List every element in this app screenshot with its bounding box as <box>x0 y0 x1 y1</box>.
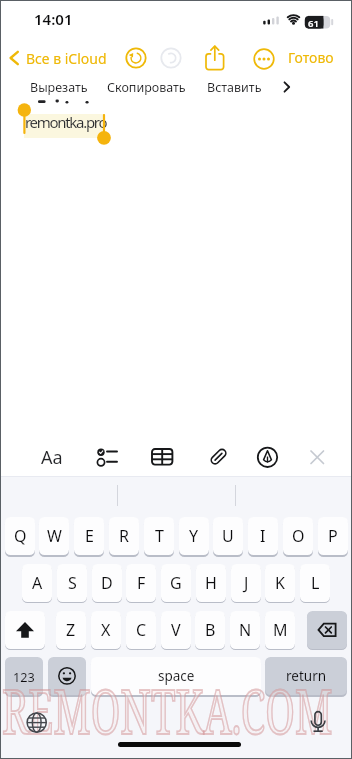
staticText: R <box>119 525 129 547</box>
staticText: 123 <box>13 668 35 685</box>
button[interactable]: P <box>318 517 348 555</box>
staticText: REMONTKA.COM <box>2 667 333 751</box>
button[interactable]: Скопировать <box>107 79 193 97</box>
button[interactable]: W <box>39 517 69 555</box>
button[interactable] <box>160 47 182 69</box>
staticText: Aa <box>41 445 63 470</box>
button[interactable] <box>253 48 275 70</box>
button[interactable]: J <box>231 564 261 602</box>
staticText: O <box>292 525 305 547</box>
button[interactable] <box>48 657 86 695</box>
button[interactable] <box>309 449 326 466</box>
staticText: I <box>260 525 266 547</box>
staticText: Z <box>66 619 76 641</box>
button[interactable]: E <box>74 517 104 555</box>
button[interactable]: B <box>195 611 225 649</box>
button[interactable] <box>203 44 227 72</box>
button[interactable] <box>205 444 231 471</box>
button[interactable]: M <box>265 611 295 649</box>
button[interactable]: O <box>283 517 313 555</box>
button[interactable] <box>280 79 294 95</box>
staticText: Скопировать <box>107 79 186 96</box>
button[interactable] <box>5 611 45 649</box>
staticText: S <box>68 572 77 594</box>
button[interactable]: U <box>213 517 243 555</box>
button[interactable]: X <box>91 611 121 649</box>
staticText: L <box>311 572 320 594</box>
staticText: D <box>101 572 113 594</box>
staticText: G <box>170 572 182 594</box>
button[interactable]: space <box>91 657 261 695</box>
staticText: A <box>32 572 43 594</box>
staticText: K <box>275 572 285 594</box>
staticText: W <box>47 525 62 547</box>
button[interactable]: R <box>109 517 139 555</box>
button[interactable]: A <box>22 564 52 602</box>
button[interactable]: N <box>230 611 260 649</box>
staticText: space <box>158 667 195 685</box>
button[interactable]: Y <box>179 517 209 555</box>
button[interactable]: S <box>57 564 87 602</box>
button[interactable] <box>257 444 283 470</box>
staticText: Готово <box>288 48 334 67</box>
staticText: H <box>205 572 217 594</box>
button[interactable]: Все в iCloud <box>4 46 114 70</box>
staticText: E <box>85 525 94 547</box>
button[interactable]: D <box>92 564 122 602</box>
button[interactable]: L <box>300 564 330 602</box>
button[interactable]: Вырезать <box>30 79 96 97</box>
staticText: M <box>273 619 288 641</box>
button[interactable]: Aa <box>38 444 66 470</box>
button[interactable]: H <box>196 564 226 602</box>
staticText: B <box>205 619 216 641</box>
staticText: X <box>101 619 111 641</box>
staticText: F <box>137 572 146 594</box>
button[interactable]: return <box>265 657 347 695</box>
staticText: C <box>136 619 147 641</box>
button[interactable]: I <box>248 517 278 555</box>
button[interactable]: T <box>144 517 174 555</box>
staticText: P <box>328 525 338 547</box>
button[interactable] <box>307 611 347 649</box>
staticText: Q <box>14 525 27 547</box>
button[interactable]: K <box>265 564 295 602</box>
button[interactable] <box>25 711 49 735</box>
staticText: Вырезать <box>30 79 88 96</box>
button[interactable]: Q <box>5 517 35 555</box>
button[interactable]: 123 <box>5 657 43 695</box>
staticText: Вставить <box>207 79 262 96</box>
staticText: N <box>239 619 252 641</box>
staticText: U <box>222 525 234 547</box>
button[interactable]: V <box>161 611 191 649</box>
button[interactable]: C <box>126 611 156 649</box>
button[interactable]: Вставить <box>207 79 269 97</box>
staticText: REMONTKA.COM <box>2 667 333 751</box>
button[interactable]: F <box>126 564 156 602</box>
button[interactable] <box>306 708 330 736</box>
button[interactable]: Z <box>56 611 86 649</box>
button[interactable] <box>150 444 176 470</box>
staticText: J <box>244 572 249 594</box>
staticText: return <box>286 667 327 685</box>
staticText: T <box>155 525 164 547</box>
staticText: 61 <box>308 17 319 30</box>
button[interactable]: Готово <box>288 48 336 68</box>
staticText: Все в iCloud <box>26 49 107 68</box>
button[interactable] <box>125 47 147 69</box>
button[interactable]: G <box>161 564 191 602</box>
staticText: remontka.pro <box>25 112 107 132</box>
staticText: V <box>171 619 181 641</box>
button[interactable] <box>92 444 124 470</box>
staticText: 14:01 <box>34 9 73 29</box>
staticText: Y <box>189 525 199 547</box>
